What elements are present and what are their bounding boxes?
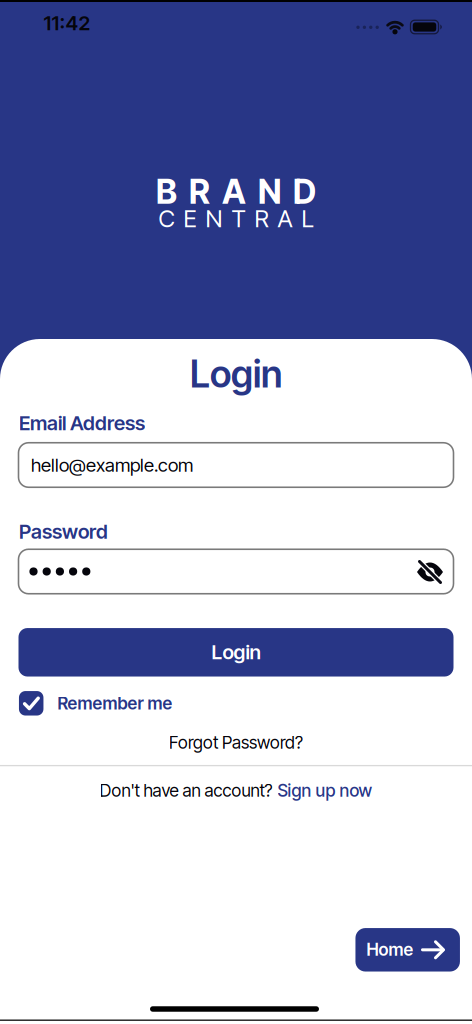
staticText: Login bbox=[211, 640, 260, 664]
staticText: A bbox=[222, 172, 246, 211]
staticText: Don't have an account? bbox=[99, 780, 272, 801]
staticText: Sign up now bbox=[277, 780, 372, 801]
staticText: R bbox=[254, 204, 268, 233]
staticText: R bbox=[189, 172, 210, 211]
staticText: A bbox=[277, 204, 292, 233]
staticText: B bbox=[156, 172, 177, 211]
staticText: D bbox=[293, 172, 316, 211]
staticText: Home bbox=[366, 939, 413, 960]
staticText: hello@example.com bbox=[31, 454, 193, 476]
staticText: N bbox=[258, 172, 281, 211]
staticText: E bbox=[183, 204, 196, 233]
staticText: 11:42 bbox=[43, 11, 90, 35]
staticText: Remember me bbox=[57, 693, 172, 713]
staticText: Password bbox=[19, 520, 108, 543]
staticText: Login bbox=[190, 352, 282, 396]
staticText: Email Address bbox=[19, 411, 145, 435]
staticText: T bbox=[231, 204, 245, 233]
staticText: L bbox=[301, 204, 313, 233]
staticText: N bbox=[205, 204, 222, 233]
staticText: C bbox=[158, 204, 174, 233]
staticText: Forgot Password? bbox=[169, 732, 303, 753]
